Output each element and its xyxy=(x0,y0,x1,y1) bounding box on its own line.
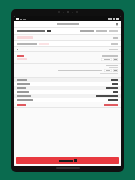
button[interactable] xyxy=(17,35,118,40)
button[interactable] xyxy=(17,86,118,90)
button[interactable] xyxy=(17,94,118,98)
button[interactable] xyxy=(101,58,112,61)
button[interactable]: Apply xyxy=(113,69,118,72)
button[interactable] xyxy=(17,78,118,82)
button[interactable] xyxy=(104,69,112,72)
button[interactable]: Continue xyxy=(16,157,119,164)
button[interactable] xyxy=(17,98,118,102)
button[interactable] xyxy=(17,90,118,94)
button[interactable]: Menu xyxy=(116,23,118,25)
button[interactable] xyxy=(17,82,118,86)
button[interactable]: Menu xyxy=(14,21,121,27)
button[interactable]: Apply xyxy=(113,58,118,61)
